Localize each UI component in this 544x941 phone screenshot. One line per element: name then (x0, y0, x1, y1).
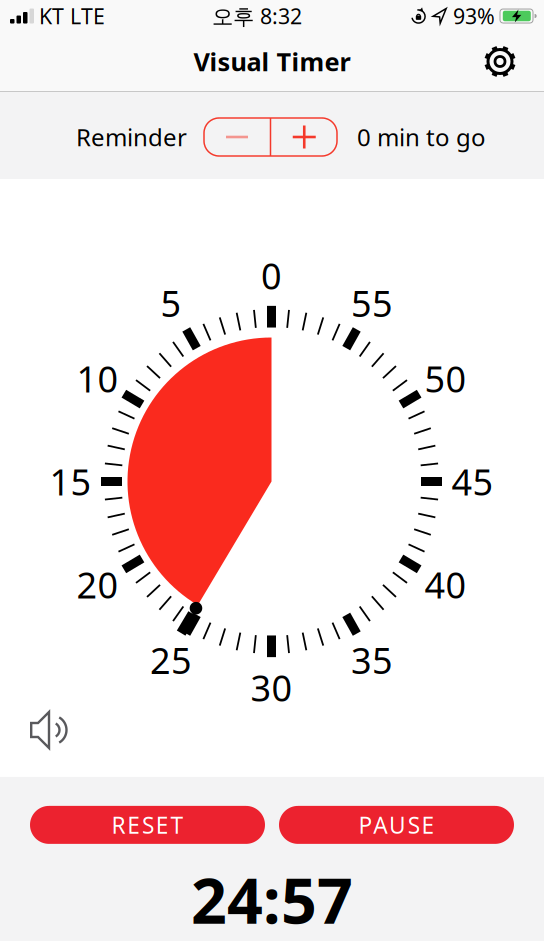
staticText: 35 (351, 636, 393, 684)
staticText: 45 (451, 458, 493, 505)
staticText: 55 (351, 279, 393, 327)
staticText: 93% (453, 2, 495, 30)
button[interactable]: RESET (30, 806, 265, 844)
staticText: 0 min to go (357, 121, 486, 153)
staticText: PAUSE (358, 810, 435, 840)
staticText: 50 (425, 355, 467, 402)
button[interactable]: Settings (484, 45, 516, 77)
staticText: 30 (250, 664, 292, 711)
staticText: 5 (160, 279, 181, 327)
staticText: 10 (76, 355, 118, 402)
button[interactable]: Decrease reminder (204, 118, 270, 156)
staticText: KT LTE (39, 2, 105, 30)
button[interactable]: PAUSE (279, 806, 514, 844)
staticText: Reminder (76, 121, 187, 153)
staticText: 15 (49, 458, 91, 505)
staticText: 20 (76, 561, 118, 608)
button[interactable]: Increase reminder (271, 118, 337, 156)
button[interactable]: Sound (30, 711, 70, 751)
staticText: 24:57 (191, 858, 353, 941)
staticText: 40 (425, 561, 467, 608)
staticText: RESET (111, 810, 184, 840)
staticText: 0 (261, 252, 282, 299)
staticText: 25 (150, 636, 192, 684)
staticText: 오후 8:32 (212, 2, 302, 30)
staticText: Visual Timer (193, 45, 350, 78)
